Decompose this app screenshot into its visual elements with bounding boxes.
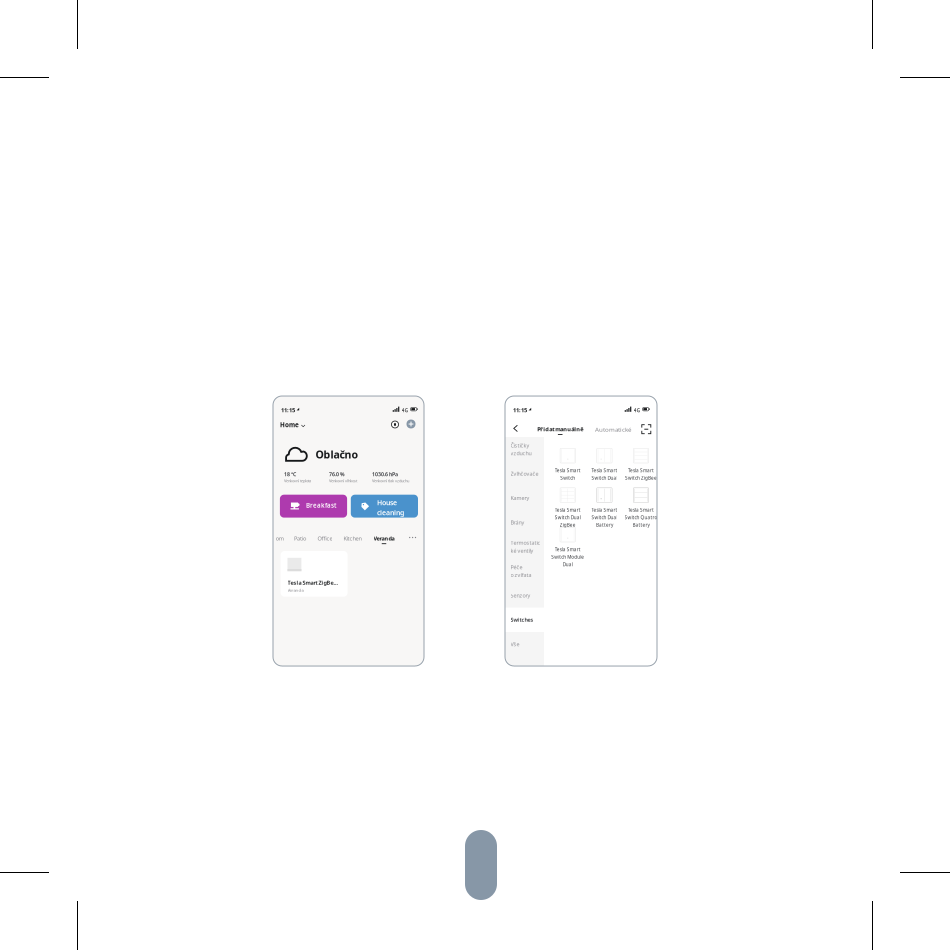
button[interactable]: Termostatic: [505, 534, 544, 559]
staticText: o zvířata: [511, 571, 532, 579]
staticText: Tesla Smart: [555, 507, 581, 513]
button[interactable]: Kitchen: [343, 535, 361, 542]
staticText: Switch Quatro: [624, 514, 657, 521]
button[interactable]: Tesla Smart: [549, 527, 586, 567]
staticText: 1030.6 hPa: [372, 471, 398, 478]
button[interactable]: om: [276, 535, 284, 542]
staticText: Zvlhčovače: [511, 470, 539, 477]
staticText: Kitchen: [343, 535, 361, 542]
staticText: 76.0 %: [329, 471, 345, 478]
staticText: Switch Module: [551, 554, 584, 560]
button[interactable]: Tesla Smart: [623, 448, 659, 488]
staticText: Switch ZigBee: [625, 475, 657, 481]
staticText: 18 °C: [284, 471, 296, 478]
button[interactable]: Automatické: [595, 425, 631, 434]
button[interactable]: Switches: [505, 608, 544, 632]
staticText: Tesla Smart: [555, 467, 581, 474]
button[interactable]: Tesla Smart ZigBe…: [281, 551, 348, 597]
button[interactable]: Přidat manuálně: [537, 425, 583, 435]
staticText: Tesla Smart: [591, 467, 617, 474]
staticText: Brány: [511, 519, 525, 526]
staticText: Veranda: [373, 535, 394, 542]
staticText: Čističky: [511, 442, 530, 449]
staticText: om: [276, 535, 284, 542]
button[interactable]: House: [351, 495, 418, 518]
staticText: Kamery: [511, 494, 530, 502]
staticText: 11:15: [513, 406, 527, 414]
staticText: Senzory: [511, 592, 531, 599]
button[interactable]: Scan QR code: [642, 425, 651, 434]
button[interactable]: Office: [317, 535, 332, 542]
staticText: Battery: [632, 522, 649, 528]
button[interactable]: Tesla Smart: [623, 488, 659, 527]
staticText: Patio: [294, 535, 306, 542]
button[interactable]: Vše: [505, 632, 544, 656]
staticText: Vše: [511, 640, 520, 648]
staticText: Switches: [511, 616, 534, 623]
staticText: Battery: [596, 522, 613, 528]
staticText: 11:15: [281, 406, 295, 414]
button[interactable]: Tesla Smart: [586, 448, 623, 488]
button[interactable]: Home: [280, 421, 305, 429]
staticText: cleaning: [377, 508, 404, 517]
staticText: Switch Dual: [555, 514, 581, 521]
staticText: Přidat manuálně: [537, 425, 583, 433]
staticText: vzduchu: [511, 450, 532, 457]
button[interactable]: Tesla Smart: [549, 448, 586, 488]
staticText: Venkovní vlhkost: [329, 478, 357, 483]
staticText: House: [377, 498, 397, 507]
staticText: Oblačno: [315, 447, 358, 462]
staticText: Termostatic: [511, 539, 541, 546]
staticText: Péče: [511, 563, 523, 571]
button[interactable]: Add: [406, 419, 415, 428]
button[interactable]: More rooms: [409, 535, 417, 539]
button[interactable]: Tesla Smart: [586, 488, 623, 527]
staticText: Switch Dual: [591, 514, 617, 521]
button[interactable]: Voice assistant: [390, 420, 399, 429]
button[interactable]: Péče: [505, 559, 544, 583]
staticText: 4G: [402, 407, 408, 414]
button[interactable]: Kamery: [505, 486, 544, 510]
staticText: Home: [280, 421, 299, 429]
button[interactable]: Patio: [294, 535, 306, 542]
staticText: ZigBee: [560, 522, 576, 528]
button[interactable]: Zvlhčovače: [505, 461, 544, 486]
button[interactable]: Back: [511, 424, 521, 433]
button[interactable]: Tesla Smart: [549, 488, 586, 527]
staticText: Venkovní tlak vzduchu: [372, 478, 409, 483]
staticText: Tesla Smart: [591, 507, 617, 513]
button[interactable]: Brány: [505, 510, 544, 535]
staticText: Switch Dual: [591, 475, 617, 481]
button[interactable]: Zásuvky: [505, 656, 544, 681]
staticText: 4G: [634, 407, 640, 414]
button[interactable]: Čističky: [505, 437, 544, 461]
button[interactable]: Breakfast: [280, 495, 347, 518]
staticText: ké ventily: [511, 547, 534, 554]
staticText: Office: [317, 535, 332, 542]
staticText: Tesla Smart: [555, 546, 581, 553]
staticText: Tesla Smart: [628, 507, 654, 513]
staticText: Breakfast: [306, 501, 336, 509]
staticText: Zásuvky: [511, 665, 532, 672]
staticText: Tesla Smart ZigBe…: [287, 579, 338, 586]
staticText: Veranda: [287, 587, 303, 593]
staticText: Dual: [563, 561, 573, 568]
button[interactable]: Veranda: [373, 535, 394, 544]
staticText: Tesla Smart: [628, 467, 654, 474]
staticText: Switch: [560, 475, 575, 481]
staticText: Automatické: [595, 425, 631, 434]
staticText: Venkovní teplota: [284, 478, 311, 483]
button[interactable]: Senzory: [505, 583, 544, 608]
